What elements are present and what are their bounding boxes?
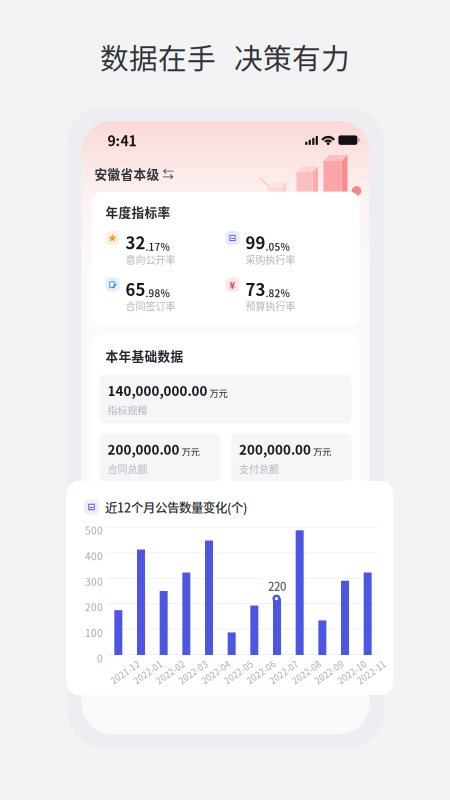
staticText: 200,000.00 <box>239 439 311 459</box>
staticText: 2022-08 <box>284 657 317 670</box>
staticText: ¥ <box>229 278 235 291</box>
staticText: 数据在手 决策有力 <box>100 36 350 77</box>
staticText: 2022-07 <box>262 657 295 670</box>
staticText: 300 <box>85 574 103 589</box>
staticText: 73 <box>245 277 265 301</box>
staticText: 99 <box>245 230 265 254</box>
staticText: 年度指标率 <box>105 203 170 221</box>
staticText: 指标规模 <box>107 403 147 417</box>
staticText: 采购执行率 <box>245 252 295 267</box>
staticText: 预算执行率 <box>245 299 295 313</box>
staticText: 2022-09 <box>307 657 340 670</box>
staticText: 万元 <box>209 386 227 399</box>
staticText: 合同签订率 <box>125 299 175 313</box>
staticText: 2022-10 <box>330 657 363 670</box>
button[interactable]: 32 <box>105 230 225 267</box>
staticText: 9:41 <box>107 130 136 150</box>
staticText: 万元 <box>313 445 331 458</box>
staticText: 近12个月公告数量变化(个) <box>105 498 247 516</box>
staticText: 220 <box>268 578 286 594</box>
staticText: .05% <box>265 239 289 254</box>
staticText: 140,000,000.00 <box>107 380 207 400</box>
staticText: 2022-01 <box>126 657 159 670</box>
staticText: 2022-11 <box>349 657 382 670</box>
staticText: 2022-02 <box>148 657 181 670</box>
staticText: 200,000.00 <box>107 439 179 459</box>
staticText: 500 <box>85 523 103 537</box>
staticText: 安徽省本级 <box>94 164 159 183</box>
staticText: 合同总额 <box>107 462 147 476</box>
staticText: 2022-06 <box>239 657 272 670</box>
staticText: 2021-12 <box>103 657 136 670</box>
staticText: 本年基础数据 <box>105 346 183 364</box>
staticText: 2022-04 <box>194 657 227 670</box>
staticText: 0 <box>97 651 103 665</box>
button[interactable]: ¥ <box>225 277 345 313</box>
staticText: .98% <box>145 286 169 300</box>
staticText: .17% <box>145 239 169 254</box>
staticText: ⇆ <box>162 165 173 182</box>
button[interactable]: 99 <box>225 230 345 267</box>
staticText: 65 <box>125 277 145 301</box>
staticText: 支付总额 <box>239 462 279 476</box>
button[interactable]: 安徽省本级 <box>94 164 173 183</box>
staticText: 200 <box>85 600 103 614</box>
staticText: 32 <box>125 230 145 254</box>
staticText: 100 <box>85 625 103 640</box>
staticText: .82% <box>265 286 289 300</box>
staticText: 意向公开率 <box>125 252 175 267</box>
staticText: 2022-03 <box>171 657 204 670</box>
staticText: 2022-05 <box>216 657 249 670</box>
staticText: 万元 <box>181 445 199 458</box>
button[interactable]: 65 <box>105 277 225 313</box>
staticText: 400 <box>85 549 103 563</box>
